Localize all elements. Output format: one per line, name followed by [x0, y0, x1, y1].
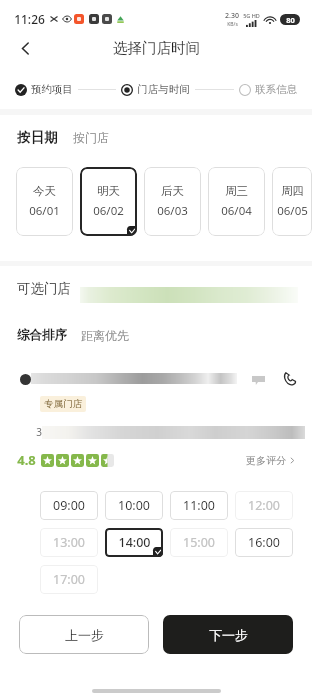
staticText: 今天	[33, 184, 56, 198]
staticText: 06/04	[221, 203, 252, 219]
button[interactable]: 综合排序	[17, 327, 67, 343]
button[interactable]: 15:00	[170, 528, 228, 557]
button[interactable]: Call store	[280, 369, 298, 387]
staticText: 80	[286, 15, 295, 25]
staticText: 17:00	[53, 571, 85, 588]
button[interactable]: 明天	[80, 167, 137, 236]
staticText: 更多评分	[246, 454, 286, 467]
button[interactable]: 按日期	[17, 129, 58, 146]
button[interactable]: 10:00	[105, 491, 163, 520]
staticText: 10:00	[118, 497, 150, 514]
button[interactable]: 11:00	[170, 491, 228, 520]
button[interactable]: Back	[12, 35, 38, 61]
staticText: 16:00	[248, 534, 280, 551]
staticText: 周三	[225, 184, 248, 198]
staticText: 上一步	[65, 627, 104, 643]
button[interactable]: 更多评分	[246, 454, 296, 467]
staticText: 06/03	[157, 203, 188, 219]
staticText: 可选门店	[17, 280, 71, 297]
staticText: 门店与时间	[137, 83, 190, 96]
button[interactable]: 联系信息	[239, 83, 297, 96]
staticText: 3	[36, 425, 42, 439]
button[interactable]: 16:00	[235, 528, 293, 557]
staticText: 14:00	[118, 534, 151, 551]
button[interactable]: 预约项目	[15, 83, 73, 96]
button[interactable]: 12:00	[235, 491, 293, 520]
button[interactable]: 今天	[16, 167, 73, 236]
button[interactable]: 门店与时间	[121, 83, 190, 96]
staticText: 09:00	[53, 497, 85, 514]
button[interactable]: 距离优先	[81, 328, 129, 343]
staticText: 13:00	[53, 534, 85, 551]
staticText: 11:00	[183, 497, 215, 514]
staticText: 按日期	[17, 129, 58, 146]
button[interactable]: 按门店	[73, 130, 109, 145]
staticText: 选择门店时间	[113, 39, 200, 57]
staticText: 4.8	[17, 451, 36, 469]
staticText: 下一步	[209, 627, 248, 643]
button[interactable]: 09:00	[40, 491, 98, 520]
staticText: 距离优先	[81, 328, 129, 343]
staticText: 预约项目	[31, 83, 73, 96]
staticText: 5G HD	[243, 12, 260, 19]
staticText: 11:26	[14, 11, 45, 27]
staticText: 06/05	[277, 203, 308, 219]
staticText: 2.30	[225, 11, 239, 21]
button[interactable]: 17:00	[40, 565, 98, 594]
staticText: 12:00	[248, 497, 280, 514]
button[interactable]: 周三	[208, 167, 265, 236]
staticText: 联系信息	[255, 83, 297, 96]
staticText: 后天	[161, 184, 184, 198]
staticText: 06/02	[93, 203, 124, 219]
staticText: 06/01	[29, 203, 60, 219]
button[interactable]: 下一步	[163, 615, 293, 654]
button[interactable]: 周四	[272, 167, 312, 236]
staticText: 周四	[281, 184, 304, 198]
staticText: KB/s	[227, 21, 238, 28]
button[interactable]: 13:00	[40, 528, 98, 557]
staticText: 按门店	[73, 130, 109, 145]
button[interactable]: 上一步	[19, 615, 149, 654]
staticText: 明天	[97, 184, 120, 198]
button[interactable]: 后天	[144, 167, 201, 236]
staticText: 15:00	[183, 534, 215, 551]
staticText: 综合排序	[17, 327, 67, 343]
button[interactable]: 14:00	[105, 528, 163, 557]
staticText: 专属门店	[44, 398, 82, 410]
